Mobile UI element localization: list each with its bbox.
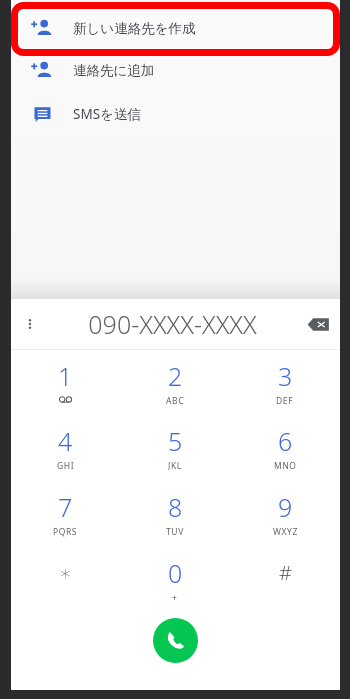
- button[interactable]: 0: [120, 546, 230, 612]
- staticText: 9: [278, 490, 293, 524]
- staticText: DEF: [276, 395, 294, 406]
- button[interactable]: 4: [11, 415, 120, 480]
- button[interactable]: 8: [120, 480, 230, 546]
- staticText: 新しい連絡先を作成: [73, 20, 196, 37]
- staticText: 4: [58, 424, 73, 458]
- staticText: 3: [278, 359, 293, 393]
- staticText: MNO: [274, 460, 297, 471]
- staticText: TUV: [166, 526, 184, 537]
- button[interactable]: 3: [230, 350, 340, 415]
- button[interactable]: 連絡先に追加: [11, 48, 340, 92]
- staticText: 連絡先に追加: [73, 62, 155, 79]
- button[interactable]: ∗: [11, 546, 120, 612]
- button[interactable]: 9: [230, 480, 340, 546]
- button[interactable]: 6: [230, 415, 340, 480]
- staticText: SMSを送信: [73, 105, 141, 123]
- staticText: 7: [58, 490, 73, 524]
- button[interactable]: 1: [11, 350, 120, 415]
- button[interactable]: 7: [11, 480, 120, 546]
- button[interactable]: #: [230, 546, 340, 612]
- button[interactable]: SMSを送信: [11, 92, 340, 136]
- staticText: ∗: [59, 561, 72, 584]
- button[interactable]: 新しい連絡先を作成: [11, 8, 340, 48]
- staticText: 6: [278, 424, 293, 458]
- staticText: WXYZ: [273, 526, 298, 537]
- button[interactable]: More options: [11, 299, 49, 349]
- staticText: ABC: [166, 395, 185, 406]
- staticText: 8: [168, 490, 183, 524]
- staticText: GHI: [57, 460, 75, 471]
- staticText: 2: [168, 359, 183, 393]
- staticText: JKL: [168, 460, 182, 471]
- staticText: +: [172, 592, 178, 603]
- staticText: 5: [168, 424, 183, 458]
- staticText: 0: [168, 556, 183, 590]
- staticText: #: [279, 559, 292, 586]
- staticText: 090-XXXX-XXXX: [49, 307, 296, 341]
- button[interactable]: 2: [120, 350, 230, 415]
- staticText: 1: [58, 359, 73, 393]
- staticText: PQRS: [53, 526, 78, 537]
- button[interactable]: 5: [120, 415, 230, 480]
- button[interactable]: Backspace: [296, 299, 340, 349]
- button[interactable]: Call: [153, 618, 198, 663]
